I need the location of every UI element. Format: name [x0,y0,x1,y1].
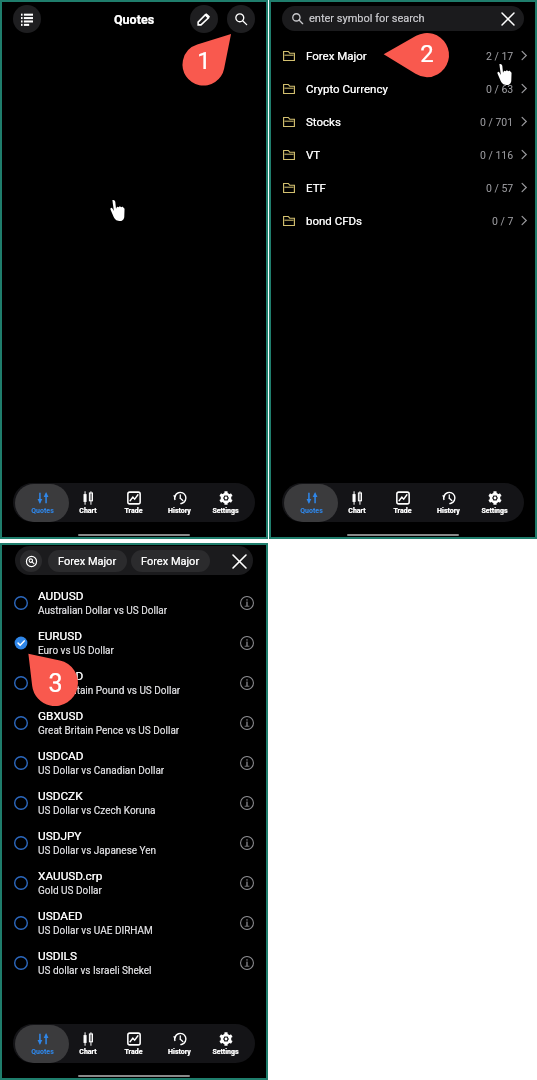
staticText: Chart [79,507,97,515]
staticText: Trade [124,1048,143,1056]
staticText: enter symbol for search [309,12,425,25]
button[interactable]: USDILS [2,943,266,983]
staticText: US Dollar vs Canadian Dollar [38,765,165,777]
staticText: Stocks [306,115,341,128]
button[interactable]: ETF [271,171,535,204]
staticText: Chart [348,507,366,515]
button[interactable]: USDCAD [2,743,266,783]
button[interactable]: History [425,483,471,522]
staticText: US Dollar vs UAE DIRHAM [38,925,153,937]
staticText: Great Britain Pound vs US Dollar [38,685,181,697]
button[interactable]: bond CFDs [271,204,535,237]
staticText: History [437,507,460,515]
staticText: VT [306,148,321,161]
button[interactable]: Menu [13,5,41,33]
button[interactable]: Search [20,550,42,572]
staticText: US dollar vs Israeli Shekel [38,965,152,977]
staticText: GBPUSD [38,669,84,683]
button[interactable]: Chart [65,1024,110,1063]
staticText: EURUSD [38,629,83,643]
button[interactable]: History [156,1024,202,1063]
button[interactable]: enter symbol for search [282,6,524,31]
staticText: 1 [197,47,211,75]
button[interactable]: History [156,483,202,522]
staticText: Settings [481,507,508,515]
staticText: Quotes [114,12,155,27]
button[interactable]: Chart [65,483,110,522]
staticText: USDILS [38,949,77,963]
button[interactable]: Trade [379,483,425,522]
staticText: 0 / 57 [486,182,514,194]
staticText: USDAED [38,909,83,923]
button[interactable]: USDJPY [2,823,266,863]
staticText: Forex Major [306,49,367,62]
button[interactable]: Quotes [20,483,65,522]
staticText: Trade [393,507,412,515]
button[interactable]: Quotes [20,1024,65,1063]
button[interactable]: Settings [471,483,517,522]
staticText: 0 / 7 [492,215,514,227]
button[interactable]: Clear [497,8,519,30]
button[interactable]: GBPUSD [2,663,266,703]
staticText: Quotes [31,1048,54,1056]
staticText: GBXUSD [38,709,84,723]
staticText: bond CFDs [306,214,363,227]
button[interactable]: Close [228,550,250,572]
staticText: Quotes [31,507,54,515]
staticText: History [168,507,191,515]
button[interactable]: Chart [334,483,379,522]
staticText: 2 / 17 [486,50,514,62]
button[interactable]: Settings [202,1024,248,1063]
staticText: 3 [48,669,63,698]
staticText: Quotes [300,507,323,515]
button[interactable]: Search [227,5,255,33]
button[interactable]: Info [236,792,258,814]
button[interactable]: Forex Major [271,39,535,72]
button[interactable]: AUDUSD [2,583,266,623]
staticText: Settings [212,1048,239,1056]
button[interactable]: Settings [202,483,248,522]
staticText: Trade [124,507,143,515]
staticText: Crypto Currency [306,82,388,95]
button[interactable]: Forex Major [131,550,210,572]
button[interactable]: Info [236,872,258,894]
staticText: US Dollar vs Czech Koruna [38,805,156,817]
button[interactable]: Info [236,752,258,774]
staticText: 2 [420,40,434,68]
staticText: Forex Major [58,555,117,568]
button[interactable]: USDAED [2,903,266,943]
button[interactable]: Info [236,952,258,974]
button[interactable]: Info [236,592,258,614]
staticText: XAUUSD.crp [38,869,103,883]
staticText: Forex Major [141,555,200,568]
button[interactable]: Forex Major [48,550,127,572]
button[interactable]: Info [236,712,258,734]
button[interactable]: XAUUSD.crp [2,863,266,903]
staticText: AUDUSD [38,589,84,603]
staticText: Chart [79,1048,97,1056]
button[interactable]: USDCZK [2,783,266,823]
button[interactable]: Info [236,912,258,934]
staticText: 0 / 63 [486,83,514,95]
staticText: Great Britain Pence vs US Dollar [38,725,180,737]
button[interactable]: Stocks [271,105,535,138]
button[interactable]: VT [271,138,535,171]
button[interactable]: Info [236,632,258,654]
staticText: 0 / 701 [480,116,514,128]
button[interactable]: Crypto Currency [271,72,535,105]
button[interactable]: Quotes [289,483,334,522]
button[interactable]: Trade [110,1024,156,1063]
button[interactable]: GBXUSD [2,703,266,743]
button[interactable]: Edit [190,5,218,33]
staticText: USDCZK [38,789,83,803]
staticText: US Dollar vs Japanese Yen [38,845,157,857]
staticText: ETF [306,181,326,194]
button[interactable]: Trade [110,483,156,522]
staticText: USDCAD [38,749,84,763]
staticText: Settings [212,507,239,515]
button[interactable]: EURUSD [2,623,266,663]
button[interactable]: Info [236,672,258,694]
button[interactable]: Info [236,832,258,854]
staticText: Euro vs US Dollar [38,645,114,657]
staticText: Gold US Dollar [38,885,102,897]
